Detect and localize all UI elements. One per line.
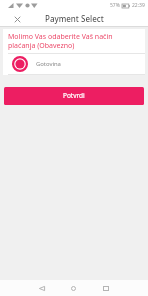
button[interactable]: Gotovina [3,54,145,74]
button[interactable]: Potvrdi [4,87,144,105]
staticText: Gotovina [36,60,61,68]
staticText: 22:39 [132,2,145,9]
button[interactable]: Recents [99,282,112,295]
staticText: Payment Select [45,13,104,24]
staticText: Molimo Vas odaberite Vaš način plaćanja … [8,32,118,50]
staticText: 57% [110,2,120,9]
button[interactable]: Close [11,13,24,26]
button[interactable]: Home [67,282,80,295]
button[interactable]: Back [35,282,48,295]
staticText: Potvrdi [63,91,85,100]
